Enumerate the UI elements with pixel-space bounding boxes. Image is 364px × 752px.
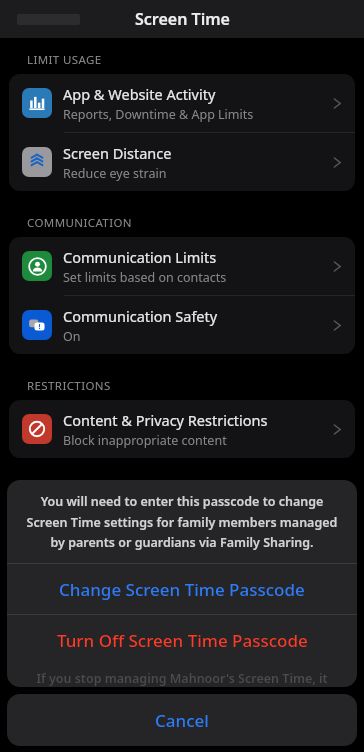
button[interactable]: Content & Privacy Restrictions [9,400,355,458]
button[interactable]: Screen Distance [9,133,355,191]
staticText: Reports, Downtime & App Limits [63,106,254,123]
button[interactable]: Communication Safety [9,296,355,354]
staticText: RESTRICTIONS [27,378,111,394]
staticText: You will need to enter this passcode to … [23,493,341,550]
staticText: If you stop managing Mahnoor's Screen Ti… [21,670,343,687]
staticText: COMMUNICATION [27,215,132,231]
staticText: Content & Privacy Restrictions [63,410,268,430]
staticText: Communication Safety [63,306,218,326]
staticText: Screen Distance [63,143,172,163]
staticText: Turn Off Screen Time Passcode [57,629,308,652]
staticText: Change Screen Time Passcode [59,578,305,601]
button[interactable]: Turn Off Screen Time Passcode [7,615,357,665]
staticText: App & Website Activity [63,84,216,104]
button[interactable]: App & Website Activity [9,74,355,132]
staticText: On [63,328,81,345]
staticText: Screen Time [135,8,230,30]
button[interactable]: Communication Limits [9,237,355,295]
staticText: LIMIT USAGE [27,52,102,68]
staticText: Cancel [155,709,209,732]
staticText: Reduce eye strain [63,165,167,182]
staticText: Set limits based on contacts [63,269,227,286]
button[interactable]: Cancel [7,694,357,746]
staticText: Block inappropriate content [63,432,227,449]
staticText: Communication Limits [63,247,217,267]
button[interactable]: Change Screen Time Passcode [7,564,357,614]
